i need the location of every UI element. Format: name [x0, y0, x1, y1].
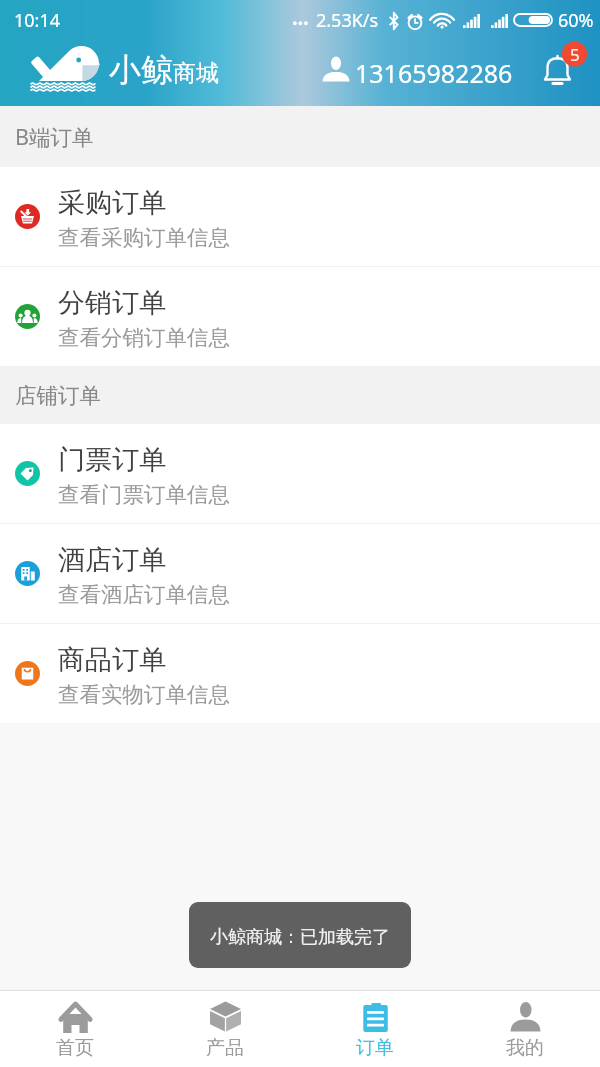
staticText: 10:14	[14, 8, 61, 33]
staticText: 首页	[56, 1036, 94, 1060]
button[interactable]: 首页	[0, 991, 150, 1067]
staticText: 小鲸商城：已加载完了	[210, 926, 390, 949]
staticText: 订单	[356, 1036, 394, 1060]
staticText: 60%	[558, 8, 594, 33]
staticText: 门票订单	[58, 443, 166, 477]
button[interactable]: 分销订单	[0, 267, 600, 366]
button[interactable]: 酒店订单	[0, 524, 600, 623]
staticText: 分销订单	[58, 286, 166, 320]
staticText: 查看酒店订单信息	[58, 581, 230, 608]
staticText: 商城	[173, 59, 219, 88]
staticText: 酒店订单	[58, 543, 166, 577]
staticText: 商品订单	[58, 643, 166, 677]
button[interactable]: 我的	[450, 991, 600, 1067]
staticText: 查看实物订单信息	[58, 681, 230, 708]
button[interactable]: 13165982286	[318, 56, 517, 90]
button[interactable]: 门票订单	[0, 424, 600, 523]
staticText: 采购订单	[58, 186, 166, 220]
button[interactable]: Notifications	[541, 47, 593, 99]
button[interactable]: 商品订单	[0, 624, 600, 723]
button[interactable]: 订单	[300, 991, 450, 1067]
button[interactable]: 产品	[150, 991, 300, 1067]
staticText: 店铺订单	[15, 382, 101, 409]
button[interactable]: 采购订单	[0, 167, 600, 266]
staticText: 查看采购订单信息	[58, 224, 230, 251]
staticText: 查看分销订单信息	[58, 324, 230, 351]
staticText: 2.53K/s	[316, 8, 379, 33]
staticText: B端订单	[15, 122, 94, 151]
staticText: 小鲸	[109, 50, 173, 90]
staticText: 查看门票订单信息	[58, 481, 230, 508]
staticText: 我的	[506, 1036, 544, 1060]
staticText: 5	[570, 43, 580, 66]
staticText: 13165982286	[355, 56, 513, 90]
staticText: 产品	[206, 1036, 244, 1060]
